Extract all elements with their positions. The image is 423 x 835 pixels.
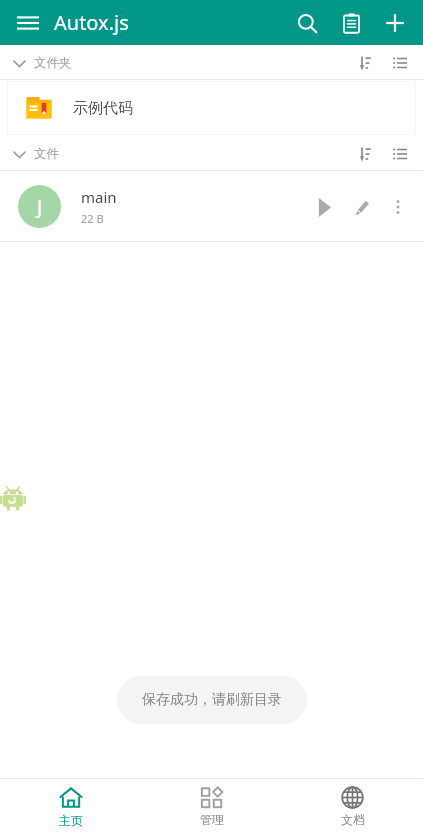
staticText: 主页 [59,813,83,828]
button[interactable]: More options [381,190,415,224]
button[interactable]: Run [305,188,343,226]
staticText: Autox.js [54,9,129,36]
staticText: J [37,194,43,220]
button[interactable]: 文档 [282,780,423,833]
button[interactable]: Open navigation drawer [10,5,46,41]
staticText: 22 B [81,211,104,226]
button[interactable]: Change view [383,137,417,171]
staticText: 文件 [34,146,59,162]
button[interactable]: 管理 [141,781,282,833]
staticText: 示例代码 [73,99,133,118]
button[interactable]: 主页 [0,780,141,834]
button[interactable]: Logs [329,1,373,45]
button[interactable]: 文件 [6,141,59,167]
button[interactable]: Search [285,1,329,45]
button[interactable]: Add [373,1,417,45]
staticText: main [81,187,117,207]
staticText: 保存成功，请刷新目录 [142,691,282,709]
button[interactable]: 文件夹 [6,50,72,76]
button[interactable]: Edit [343,188,381,226]
button[interactable]: 示例代码 [7,81,416,135]
staticText: 管理 [200,812,224,827]
button[interactable]: Change view [383,46,417,80]
button[interactable]: Sort [349,46,383,80]
staticText: 文件夹 [34,55,72,71]
button[interactable]: J [0,171,423,242]
staticText: 文档 [341,812,365,827]
button[interactable]: Sort [349,137,383,171]
